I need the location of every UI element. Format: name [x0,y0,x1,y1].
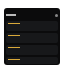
button[interactable] [6,33,58,43]
button[interactable] [6,57,58,64]
button[interactable] [6,21,58,31]
button[interactable] [6,45,58,55]
